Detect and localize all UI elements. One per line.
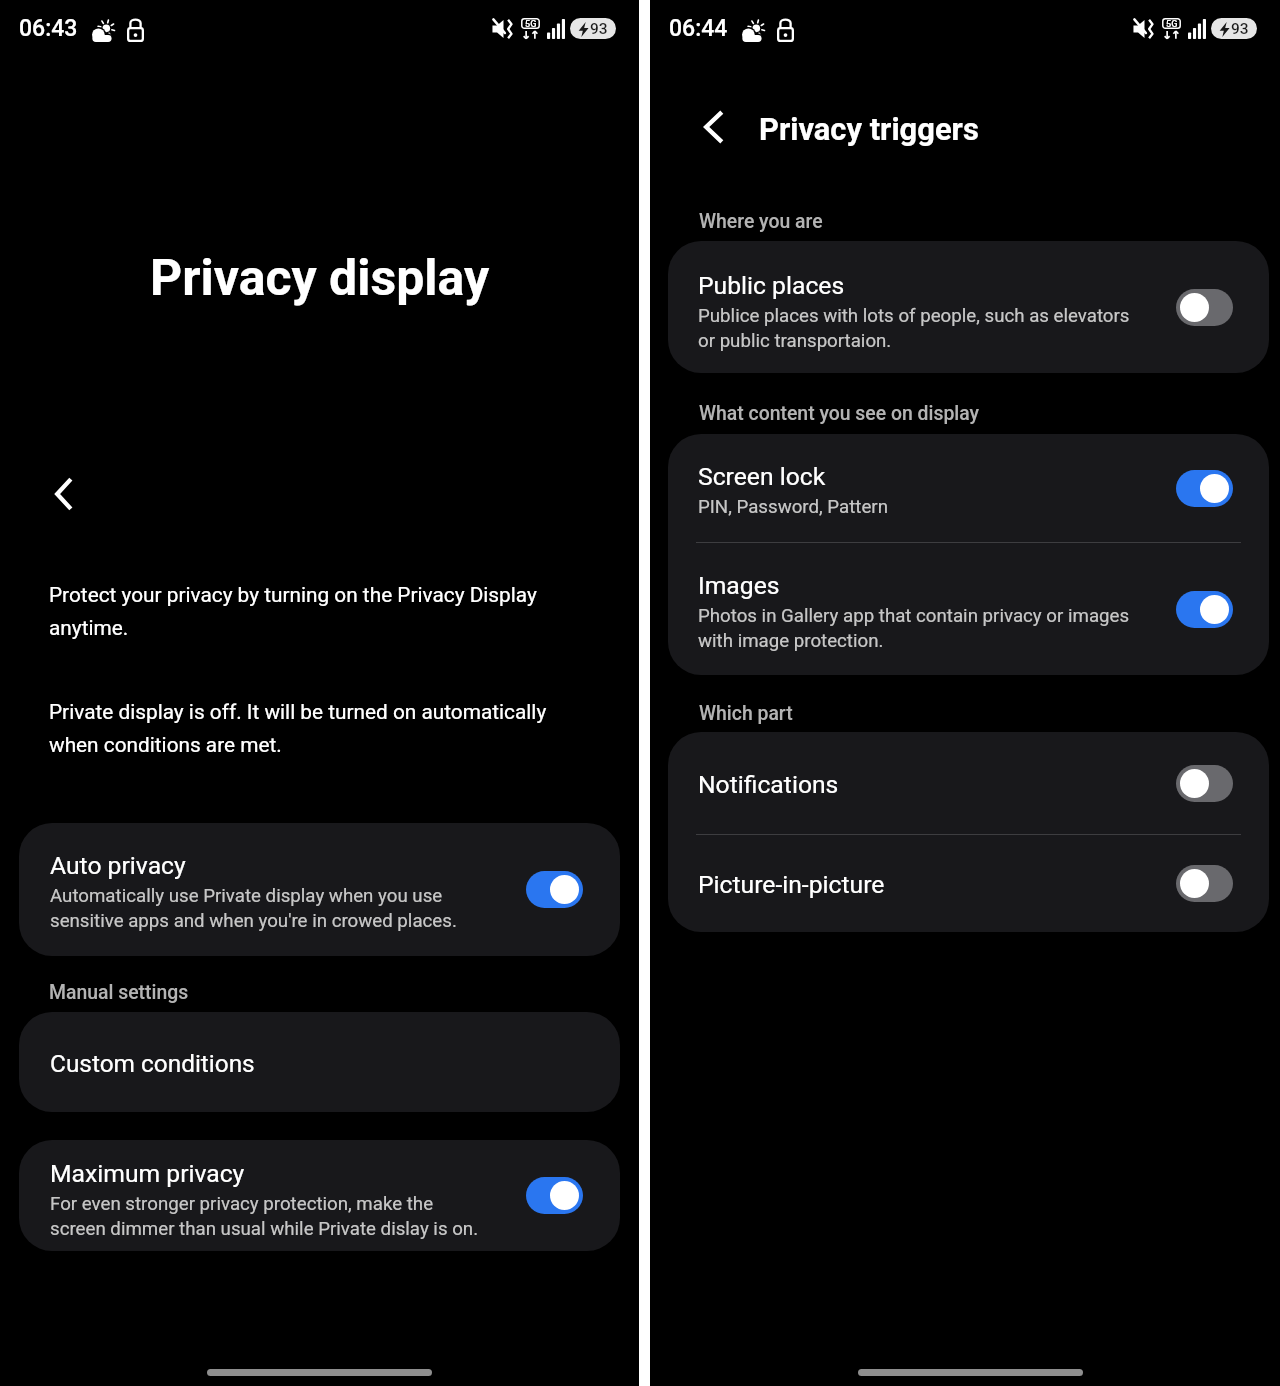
staticText: Privacy triggers [759, 111, 979, 147]
other: Back [704, 110, 724, 144]
other: Back [55, 477, 73, 511]
other: Weather [89, 19, 113, 45]
other: 5G network [521, 18, 540, 39]
other: Signal strength [547, 19, 565, 39]
staticText: Where you are [699, 210, 823, 233]
button[interactable]: Off [1176, 865, 1233, 902]
staticText: Public places [698, 271, 845, 300]
staticText: 93 [1231, 20, 1249, 38]
button[interactable]: On [1176, 470, 1233, 507]
button[interactable]: Maximum privacy [19, 1140, 620, 1251]
other: Weather [739, 19, 763, 45]
button[interactable]: Custom conditions [19, 1012, 620, 1112]
staticText: Picture-in-picture [698, 870, 885, 899]
staticText: Protect your privacy by turning on the P… [49, 583, 564, 640]
other: Screen locked [777, 19, 794, 42]
staticText: Which part [699, 702, 793, 725]
button[interactable]: Screen lock [668, 434, 1269, 542]
other: Ringer muted [492, 19, 515, 39]
button[interactable]: Public places [668, 241, 1269, 373]
staticText: 06:43 [19, 15, 78, 42]
staticText: PIN, Password, Pattern [698, 496, 1140, 518]
staticText: Custom conditions [50, 1049, 255, 1078]
staticText: Screen lock [698, 462, 826, 491]
other: Signal strength [1188, 19, 1206, 39]
staticText: 93 [590, 20, 608, 38]
staticText: Privacy display [0, 249, 639, 308]
staticText: Manual settings [49, 981, 189, 1004]
other: Ringer muted [1133, 19, 1156, 39]
staticText: 5G [525, 18, 537, 29]
staticText: Images [698, 571, 780, 600]
staticText: For even stronger privacy protection, ma… [50, 1193, 486, 1239]
button[interactable]: Notifications [668, 732, 1269, 834]
other: 5G network [1162, 18, 1181, 39]
button[interactable]: On [1176, 591, 1233, 628]
staticText: Maximum privacy [50, 1159, 245, 1188]
staticText: Automatically use Private display when y… [50, 885, 486, 931]
button[interactable]: On [526, 871, 583, 908]
staticText: Private display is off. It will be turne… [49, 700, 564, 757]
button[interactable]: Auto privacy [19, 823, 620, 956]
staticText: 06:44 [669, 15, 728, 42]
button[interactable]: Off [1176, 765, 1233, 802]
other: Battery 93 percent, charging [1211, 18, 1257, 39]
other: Battery 93 percent, charging [570, 18, 616, 39]
other: Screen locked [127, 19, 144, 42]
staticText: Notifications [698, 770, 839, 799]
staticText: 5G [1166, 18, 1178, 29]
button[interactable]: On [526, 1177, 583, 1214]
staticText: Photos in Gallery app that contain priva… [698, 605, 1140, 651]
button[interactable]: Picture-in-picture [668, 835, 1269, 932]
staticText: Publice places with lots of people, such… [698, 305, 1140, 351]
staticText: Auto privacy [50, 851, 186, 880]
staticText: What content you see on display [699, 402, 980, 425]
button[interactable]: Off [1176, 289, 1233, 326]
button[interactable]: Images [668, 543, 1269, 675]
